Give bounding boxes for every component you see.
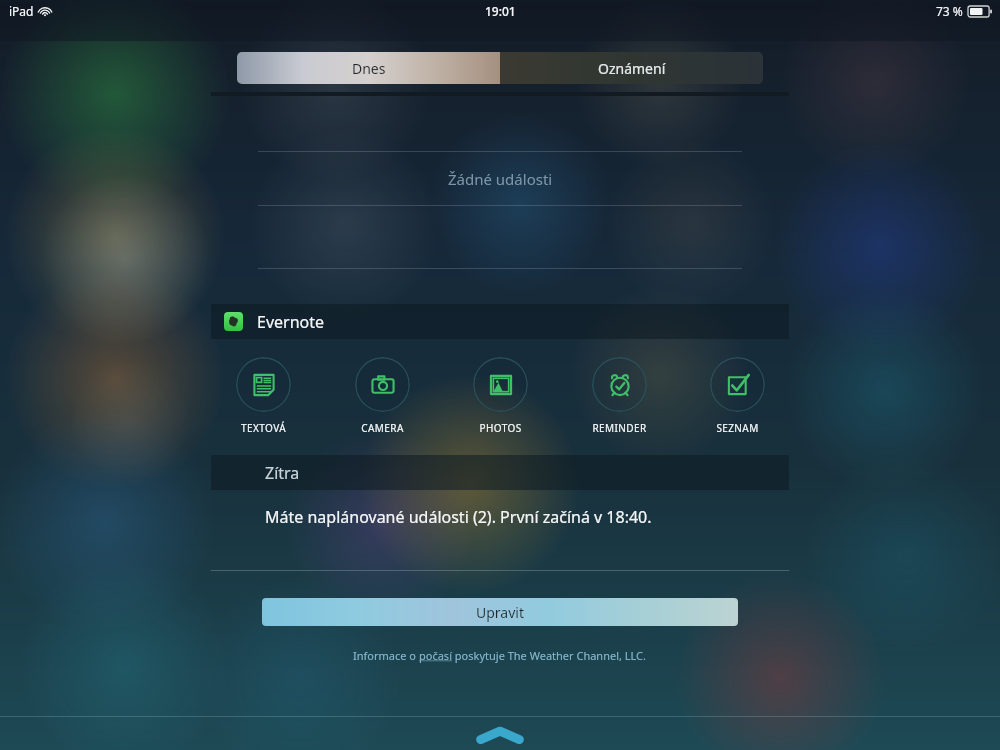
staticText: 73 %	[936, 3, 963, 19]
staticText: PHOTOS	[479, 421, 522, 435]
staticText: Evernote	[257, 311, 325, 333]
staticText: Máte naplánované události (2). První zač…	[265, 506, 652, 528]
button[interactable]: Evernote	[211, 304, 789, 339]
staticText: Žádné události	[448, 169, 553, 189]
staticText: Informace o	[353, 648, 419, 663]
button[interactable]: Upravit	[262, 598, 738, 626]
button[interactable]: počasí	[419, 648, 452, 663]
button[interactable]: REMINDER	[578, 357, 660, 435]
staticText: Zítra	[265, 462, 300, 484]
button[interactable]: SEZNAM	[696, 357, 778, 435]
button[interactable]: Dnes	[237, 52, 500, 84]
staticText: Dnes	[352, 59, 386, 78]
staticText: CAMERA	[361, 421, 404, 435]
staticText: SEZNAM	[716, 421, 759, 435]
button[interactable]: TEXTOVÁ	[222, 357, 304, 435]
button[interactable]: Close notification center	[478, 728, 522, 744]
button[interactable]: Zítra	[211, 455, 789, 490]
staticText: poskytuje The Weather Channel, LLC.	[452, 648, 647, 663]
staticText: TEXTOVÁ	[241, 421, 286, 435]
staticText: Upravit	[476, 603, 524, 622]
staticText: 19:01	[485, 3, 516, 19]
button[interactable]: PHOTOS	[459, 357, 541, 435]
staticText: Oznámení	[598, 59, 666, 78]
button[interactable]: Oznámení	[500, 52, 763, 84]
staticText: iPad	[9, 3, 34, 19]
staticText: REMINDER	[592, 421, 647, 435]
button[interactable]: CAMERA	[341, 357, 423, 435]
